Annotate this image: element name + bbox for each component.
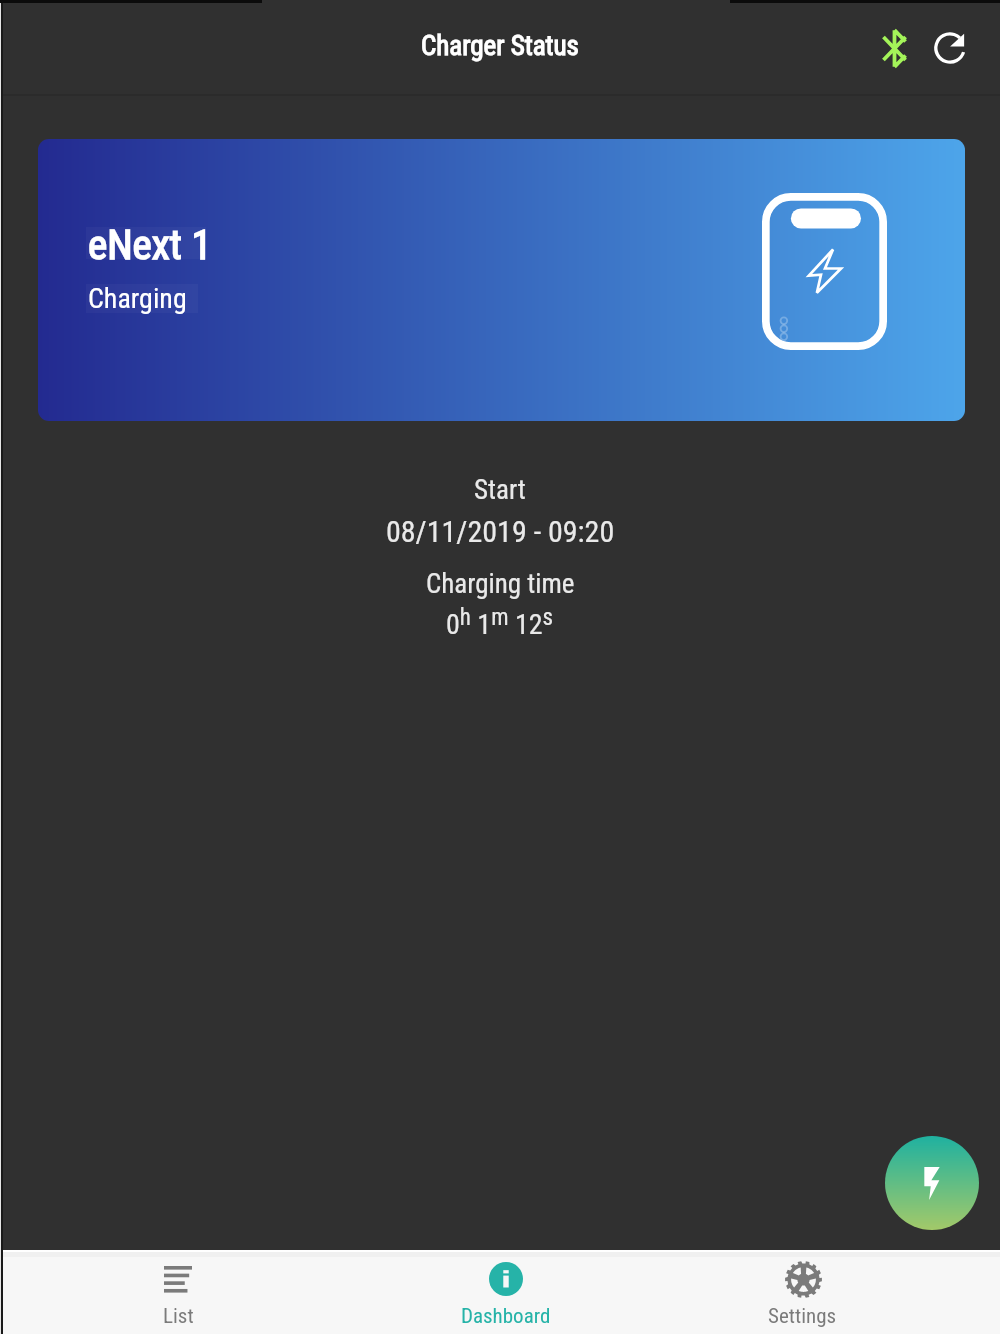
button[interactable]: eNext 1 (38, 139, 965, 421)
staticText: Charging time (426, 568, 575, 600)
staticText: Charger Status (421, 30, 579, 62)
staticText: Start (474, 474, 526, 506)
staticText: Dashboard (461, 1304, 551, 1329)
button[interactable]: Settings (655, 1250, 950, 1334)
staticText: List (163, 1304, 194, 1329)
button[interactable]: Refresh (920, 18, 980, 78)
staticText: 08/11/2019 - 09:20 (386, 514, 615, 549)
button[interactable]: List (0, 1250, 356, 1334)
staticText: Charging (88, 282, 187, 315)
button[interactable]: Start charging (885, 1136, 979, 1230)
staticText: eNext 1 (88, 221, 212, 269)
staticText: 0h 1m 12s (446, 604, 554, 641)
button[interactable]: Bluetooth (864, 18, 924, 78)
staticText: Settings (768, 1304, 837, 1329)
button[interactable]: Dashboard (356, 1250, 655, 1334)
